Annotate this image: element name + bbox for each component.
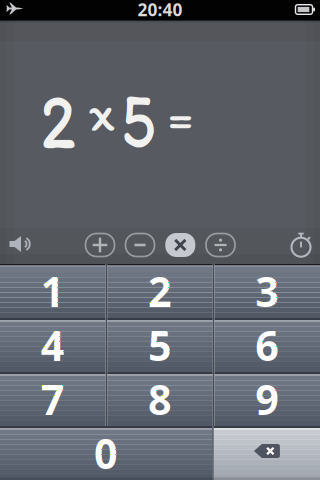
staticText: 20:40 bbox=[137, 0, 182, 21]
button[interactable]: 4 bbox=[0, 318, 106, 372]
staticText: = bbox=[167, 88, 193, 144]
button[interactable]: Division bbox=[205, 232, 236, 257]
staticText: 2 bbox=[148, 264, 172, 318]
staticText: 1 bbox=[41, 264, 65, 318]
button[interactable]: 9 bbox=[214, 372, 320, 426]
staticText: 7 bbox=[41, 372, 65, 426]
button[interactable]: 5 bbox=[107, 318, 213, 372]
staticText: 6 bbox=[255, 318, 279, 372]
button[interactable]: 6 bbox=[214, 318, 320, 372]
button[interactable]: Timer bbox=[290, 232, 313, 257]
button[interactable]: Multiplication bbox=[165, 232, 196, 257]
button[interactable]: Delete bbox=[214, 426, 320, 480]
staticText: x bbox=[88, 80, 114, 144]
button[interactable]: 8 bbox=[107, 372, 213, 426]
staticText: 2 bbox=[37, 72, 79, 168]
staticText: 5 bbox=[117, 71, 159, 167]
staticText: 8 bbox=[148, 372, 172, 426]
button[interactable]: Subtraction bbox=[124, 232, 155, 257]
button[interactable]: Addition bbox=[84, 232, 115, 257]
button[interactable]: 2 bbox=[107, 264, 213, 318]
button[interactable]: 7 bbox=[0, 372, 106, 426]
button[interactable]: 3 bbox=[214, 264, 320, 318]
staticText: 9 bbox=[255, 372, 279, 426]
button[interactable]: 0 bbox=[0, 426, 212, 480]
staticText: 5 bbox=[148, 318, 172, 372]
staticText: 0 bbox=[94, 426, 118, 480]
staticText: 4 bbox=[41, 318, 65, 372]
staticText: 3 bbox=[255, 264, 279, 318]
button[interactable]: 1 bbox=[0, 264, 106, 318]
button[interactable]: Sound bbox=[6, 232, 34, 256]
